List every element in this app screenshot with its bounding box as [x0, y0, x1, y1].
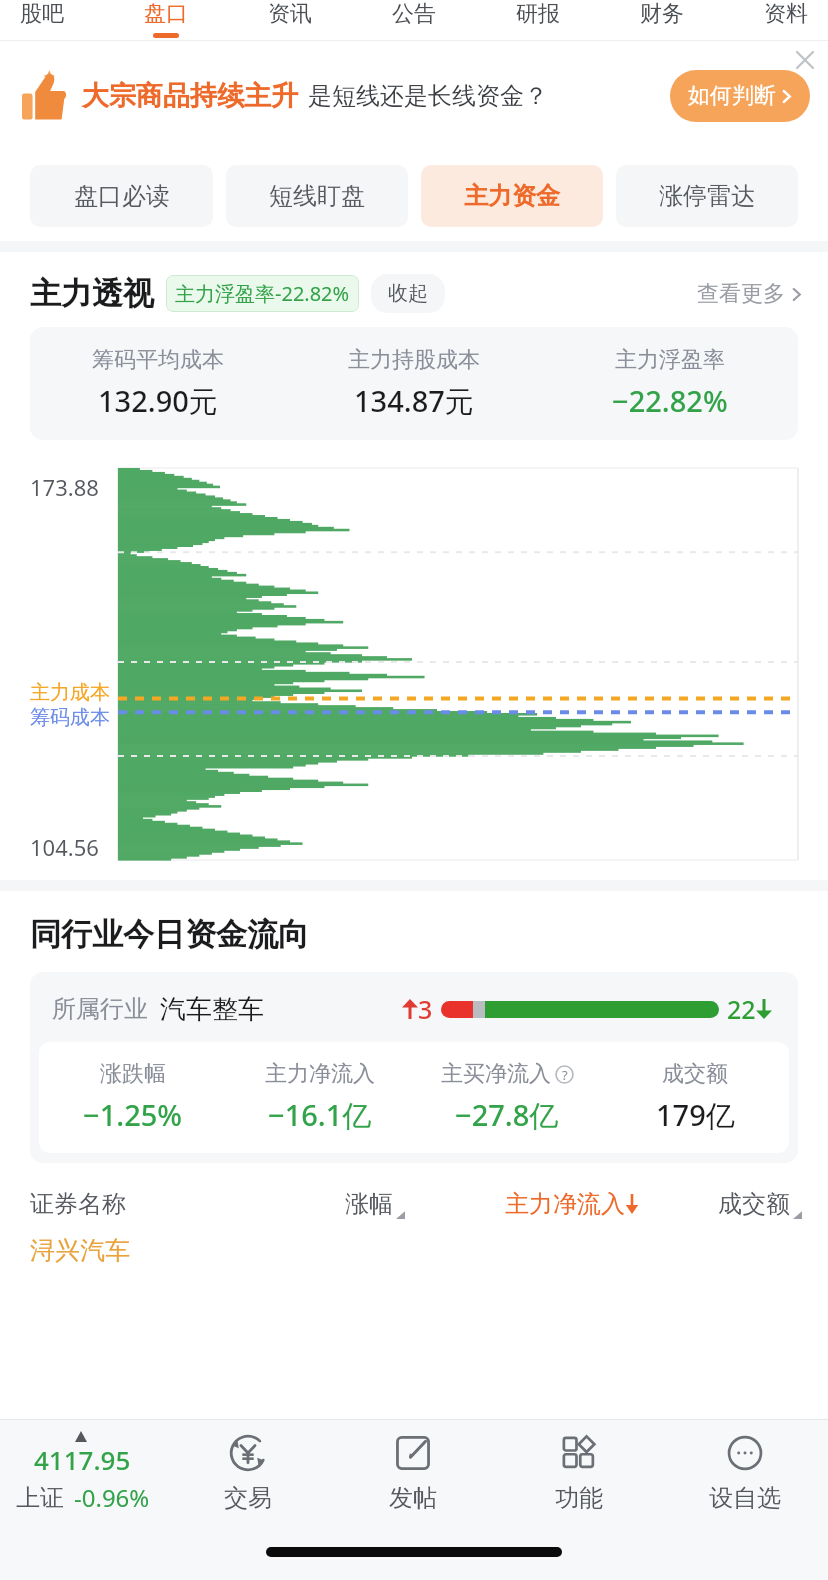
staticText: −1.25% [83, 1095, 183, 1134]
staticText: 收起 [388, 281, 428, 306]
staticText: 主力净流入 [265, 1060, 375, 1088]
staticText: 发帖 [389, 1483, 437, 1513]
staticText: 3 [418, 992, 433, 1026]
staticText: 104.56 [30, 832, 99, 862]
staticText: 短线盯盘 [269, 181, 365, 211]
staticText: 4117.95 [34, 1442, 131, 1477]
staticText: 研报 [516, 0, 560, 28]
button[interactable]: 涨幅 [242, 1189, 405, 1219]
staticText: 证券名称 [30, 1189, 242, 1219]
button[interactable]: 财务 [634, 0, 690, 33]
button[interactable]: 收起 [371, 274, 445, 313]
button[interactable]: 资讯 [262, 0, 318, 33]
staticText: 交易 [224, 1483, 272, 1513]
staticText: 成交额 [718, 1189, 790, 1219]
staticText: 筹码成本 [30, 705, 110, 730]
staticText: 所属行业 [52, 994, 148, 1024]
staticText: −22.82% [612, 381, 728, 420]
staticText: 主买净流入 [441, 1060, 551, 1088]
staticText: 盘口 [144, 0, 188, 28]
staticText: 盘口必读 [74, 181, 170, 211]
staticText: 132.90元 [98, 381, 218, 421]
staticText: 22 [727, 992, 756, 1026]
button[interactable]: 设自选 [662, 1432, 828, 1513]
staticText: 涨幅 [345, 1189, 393, 1219]
button[interactable]: 如何判断 [670, 70, 810, 122]
button[interactable]: 成交额 [639, 1189, 802, 1219]
staticText: 主力浮盈率 [615, 346, 725, 374]
button[interactable]: 研报 [510, 0, 566, 33]
button[interactable]: 关闭 [788, 43, 822, 77]
staticText: 大宗商品持续主升 [82, 79, 298, 113]
staticText: 是短线还是长线资金？ [308, 81, 548, 111]
button[interactable]: 涨停雷达 [616, 165, 798, 227]
staticText: 主力浮盈率-22.82% [175, 280, 350, 307]
button[interactable]: 功能 [496, 1432, 662, 1513]
staticText: 主力透视 [30, 274, 154, 313]
staticText: 公告 [392, 0, 436, 28]
staticText: 涨停雷达 [659, 181, 755, 211]
button[interactable]: 盘口必读 [30, 165, 213, 227]
staticText: 主力成本 [30, 680, 110, 705]
button[interactable]: 短线盯盘 [226, 165, 408, 227]
staticText: 上证 [16, 1483, 64, 1513]
staticText: 如何判断 [688, 82, 776, 110]
button[interactable]: 4117.95 [0, 1431, 165, 1514]
staticText: ? [562, 1066, 568, 1084]
staticText: 134.87元 [354, 381, 474, 421]
staticText: 涨跌幅 [100, 1060, 166, 1088]
staticText: 主力净流入 [505, 1189, 625, 1219]
staticText: 设自选 [709, 1483, 781, 1513]
staticText: 主力持股成本 [348, 346, 480, 374]
staticText: 资讯 [268, 0, 312, 28]
staticText: 主力资金 [464, 181, 560, 211]
staticText: 功能 [555, 1483, 603, 1513]
staticText: 股吧 [20, 0, 64, 28]
staticText: −27.8亿 [455, 1095, 559, 1135]
staticText: −16.1亿 [268, 1095, 372, 1135]
staticText: 查看更多 [697, 280, 785, 308]
staticText: 汽车整车 [160, 993, 264, 1026]
staticText: 资料 [764, 0, 808, 28]
button[interactable]: 资料 [758, 0, 814, 33]
staticText: 173.88 [30, 472, 99, 502]
staticText: 浔兴汽车 [30, 1235, 130, 1266]
button[interactable]: 公告 [386, 0, 442, 33]
button[interactable]: 主力净流入 [419, 1189, 639, 1219]
button[interactable]: 股吧 [14, 0, 70, 33]
staticText: 179亿 [656, 1095, 735, 1135]
button[interactable]: 说明 [555, 1065, 574, 1084]
button[interactable]: 交易 [165, 1432, 330, 1513]
button[interactable]: 盘口 [138, 0, 194, 38]
button[interactable]: 查看更多 [697, 280, 802, 308]
staticText: 成交额 [662, 1060, 728, 1088]
staticText: 筹码平均成本 [92, 346, 224, 374]
staticText: 财务 [640, 0, 684, 28]
staticText: -0.96% [74, 1481, 150, 1514]
button[interactable]: 发帖 [330, 1432, 496, 1513]
staticText: 同行业今日资金流向 [30, 915, 309, 954]
button[interactable]: 主力资金 [421, 165, 603, 227]
